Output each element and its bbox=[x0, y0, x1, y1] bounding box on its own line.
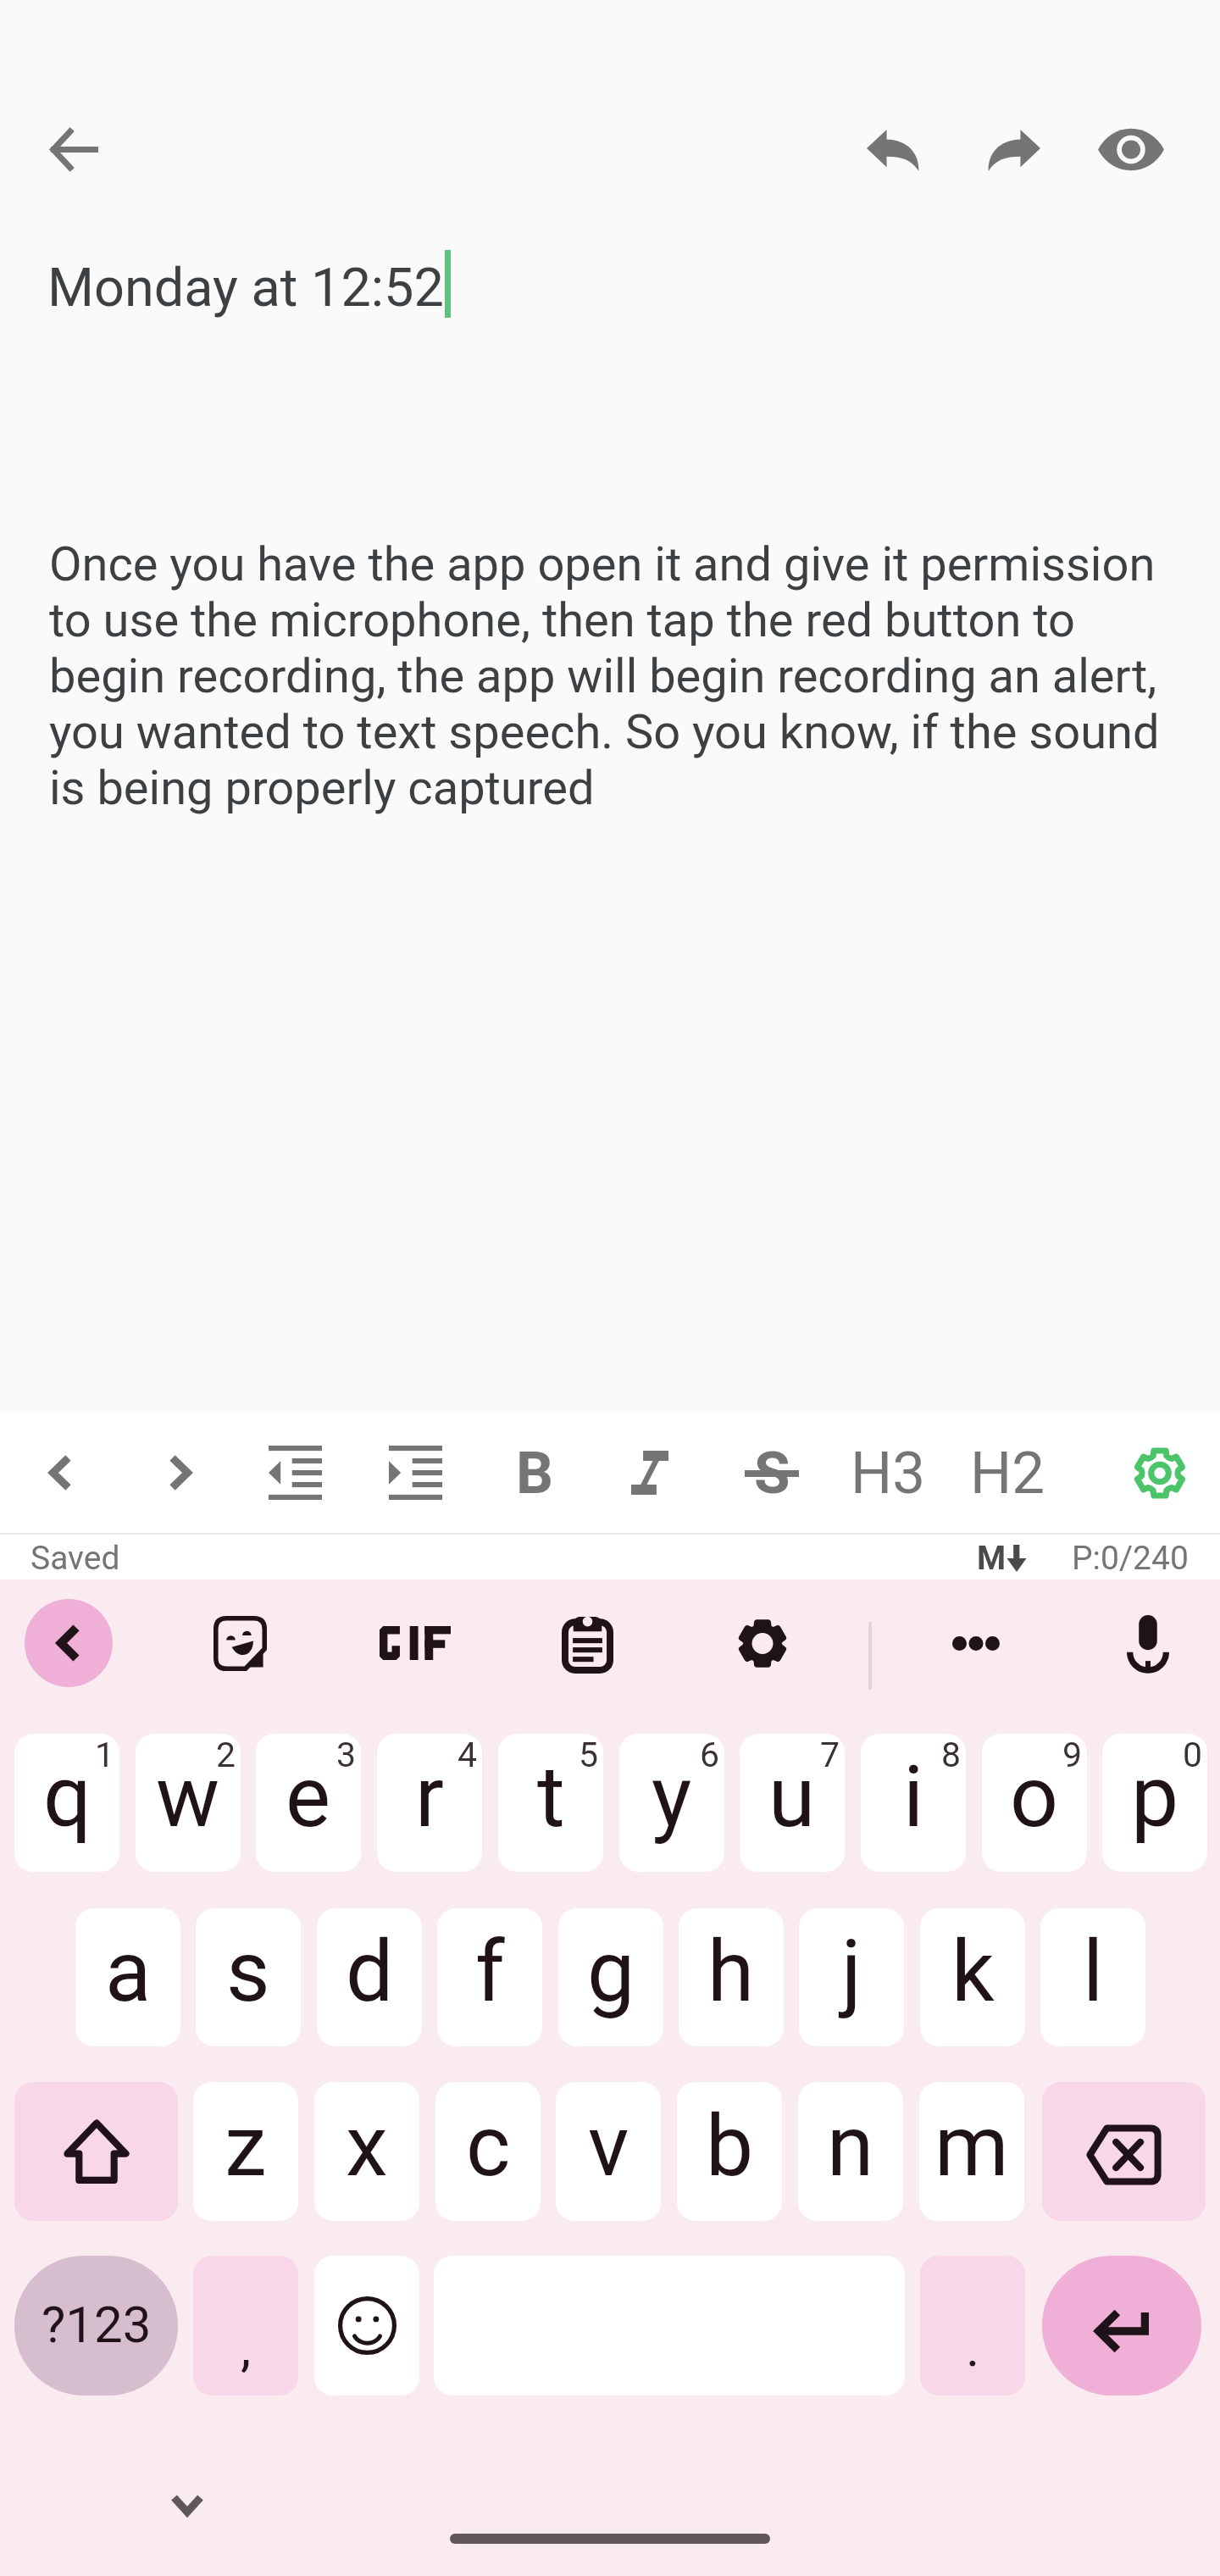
button[interactable]: Back bbox=[27, 103, 121, 197]
button[interactable]: Strikethrough bbox=[721, 1422, 823, 1524]
button[interactable]: Undo bbox=[846, 103, 940, 197]
button[interactable]: 3 bbox=[256, 1734, 361, 1872]
button[interactable]: GIF bbox=[369, 1596, 462, 1690]
button[interactable]: . bbox=[920, 2256, 1025, 2396]
staticText: P:0/240 bbox=[1072, 1539, 1189, 1578]
staticText: q bbox=[43, 1747, 91, 1846]
button[interactable]: Hide keyboard bbox=[141, 2458, 234, 2551]
staticText: x bbox=[346, 2096, 388, 2196]
button[interactable]: d bbox=[317, 1908, 422, 2046]
button[interactable]: B bbox=[484, 1422, 585, 1524]
button[interactable]: 0 bbox=[1102, 1734, 1207, 1872]
button[interactable]: Stickers bbox=[193, 1596, 286, 1690]
staticText: m bbox=[934, 2096, 1009, 2196]
button[interactable]: More options bbox=[929, 1596, 1023, 1690]
staticText: k bbox=[951, 1922, 995, 2021]
button[interactable]: 2 bbox=[136, 1734, 241, 1872]
button[interactable]: Decrease indent bbox=[244, 1422, 346, 1524]
staticText: h bbox=[707, 1922, 755, 2021]
staticText: 2 bbox=[216, 1735, 236, 1775]
button[interactable]: j bbox=[799, 1908, 904, 2046]
button[interactable]: f bbox=[437, 1908, 542, 2046]
button[interactable]: 8 bbox=[861, 1734, 966, 1872]
button[interactable]: Clipboard bbox=[541, 1596, 634, 1690]
staticText: j bbox=[841, 1922, 862, 2021]
button[interactable]: s bbox=[196, 1908, 301, 2046]
staticText: c bbox=[466, 2096, 511, 2196]
button[interactable]: , bbox=[193, 2256, 298, 2396]
button[interactable]: m bbox=[919, 2082, 1024, 2221]
staticText: a bbox=[105, 1922, 152, 2021]
button[interactable]: Enter bbox=[1042, 2256, 1201, 2396]
button[interactable]: 9 bbox=[982, 1734, 1087, 1872]
staticText: 6 bbox=[700, 1735, 720, 1775]
button[interactable]: k bbox=[920, 1908, 1025, 2046]
staticText: n bbox=[827, 2096, 874, 2196]
staticText: g bbox=[587, 1922, 635, 2021]
staticText: 8 bbox=[941, 1735, 962, 1775]
staticText: w bbox=[156, 1747, 220, 1846]
button[interactable]: x bbox=[314, 2082, 419, 2221]
staticText: H3 bbox=[851, 1439, 926, 1507]
staticText: r bbox=[415, 1747, 444, 1846]
staticText: 4 bbox=[457, 1735, 478, 1775]
button[interactable]: Italic bbox=[599, 1422, 701, 1524]
button[interactable]: Increase indent bbox=[364, 1422, 466, 1524]
button[interactable]: ?123 bbox=[14, 2256, 178, 2396]
staticText: 7 bbox=[820, 1735, 840, 1775]
staticText: d bbox=[346, 1922, 394, 2021]
staticText: 1 bbox=[95, 1735, 115, 1775]
staticText: H2 bbox=[970, 1439, 1045, 1507]
staticText: z bbox=[225, 2096, 267, 2196]
button[interactable]: 1 bbox=[14, 1734, 119, 1872]
button[interactable]: Voice input bbox=[1101, 1596, 1195, 1690]
button[interactable]: 4 bbox=[377, 1734, 482, 1872]
staticText: b bbox=[706, 2096, 754, 2196]
button[interactable]: Preview bbox=[1084, 103, 1178, 197]
staticText: Saved bbox=[30, 1539, 120, 1578]
staticText: B bbox=[516, 1439, 554, 1507]
button[interactable]: n bbox=[798, 2082, 903, 2221]
button[interactable]: v bbox=[556, 2082, 661, 2221]
staticText: ?123 bbox=[42, 2295, 152, 2354]
button[interactable]: Previous bbox=[9, 1422, 111, 1524]
button[interactable]: Next bbox=[129, 1422, 230, 1524]
button[interactable]: a bbox=[75, 1908, 180, 2046]
button[interactable]: g bbox=[558, 1908, 663, 2046]
button[interactable]: l bbox=[1040, 1908, 1145, 2046]
button[interactable]: Backspace bbox=[1042, 2082, 1206, 2221]
button[interactable]: 6 bbox=[619, 1734, 724, 1872]
staticText: M bbox=[977, 1539, 1006, 1578]
button[interactable]: Keyboard settings bbox=[716, 1596, 809, 1690]
button[interactable]: Emoji bbox=[314, 2256, 419, 2396]
staticText: e bbox=[286, 1747, 331, 1846]
staticText: Monday at 12:52 bbox=[47, 257, 444, 319]
staticText: t bbox=[537, 1747, 565, 1846]
button[interactable]: h bbox=[679, 1908, 784, 2046]
staticText: Once you have the app open it and give i… bbox=[49, 536, 1184, 816]
button[interactable]: b bbox=[677, 2082, 782, 2221]
staticText: y bbox=[652, 1747, 692, 1846]
button[interactable]: Back bbox=[25, 1599, 113, 1687]
staticText: l bbox=[1083, 1922, 1104, 2021]
staticText: 3 bbox=[336, 1735, 357, 1775]
staticText: v bbox=[588, 2096, 629, 2196]
button[interactable]: 5 bbox=[498, 1734, 603, 1872]
staticText: u bbox=[768, 1747, 816, 1846]
staticText: p bbox=[1131, 1747, 1179, 1846]
button[interactable]: Shift bbox=[14, 2082, 178, 2221]
staticText: 9 bbox=[1062, 1735, 1083, 1775]
button[interactable]: Settings bbox=[1109, 1422, 1211, 1524]
button[interactable]: c bbox=[435, 2082, 541, 2221]
staticText: i bbox=[903, 1747, 924, 1846]
button[interactable]: Redo bbox=[967, 103, 1061, 197]
button[interactable]: z bbox=[193, 2082, 298, 2221]
button[interactable]: H2 bbox=[957, 1422, 1058, 1524]
button[interactable]: H3 bbox=[837, 1422, 939, 1524]
staticText: s bbox=[226, 1922, 270, 2021]
button[interactable]: 7 bbox=[740, 1734, 845, 1872]
staticText: , bbox=[241, 2317, 252, 2379]
staticText: f bbox=[475, 1922, 505, 2021]
staticText: 0 bbox=[1183, 1735, 1203, 1775]
